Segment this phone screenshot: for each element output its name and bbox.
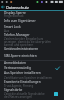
button[interactable]: des Netzes anzeigen bbox=[0, 95, 64, 99]
staticText: Datenschutz bbox=[6, 5, 29, 10]
button[interactable]: Display-Sperre bbox=[0, 11, 64, 15]
staticText: des Netzes anzeigen bbox=[4, 95, 32, 99]
staticText: Zeichen bei der Eingabe kurz bbox=[4, 37, 44, 41]
button[interactable]: Vertrauenswürdig bbox=[0, 66, 64, 71]
staticText: anzeigen, damit du sie überprüfen bbox=[4, 40, 51, 44]
button[interactable]: Anmeldedaten bbox=[0, 61, 64, 65]
button[interactable]: Zeigt die aktuelle Signalstärke bbox=[0, 92, 64, 96]
staticText: Vertrauenswürdig bbox=[4, 66, 31, 70]
staticText: Signalstärke bbox=[4, 88, 23, 92]
staticText: kannst und speichern bbox=[4, 43, 34, 47]
staticText: Geräteadministratoren bbox=[4, 47, 39, 51]
button[interactable]: Info zum Eigentümer bbox=[0, 19, 64, 23]
other: Enabled bbox=[55, 66, 60, 71]
staticText: Zeigt die aktuelle Signalstärke bbox=[4, 92, 45, 96]
button[interactable]: Zertifikate von Speicher installieren bbox=[0, 76, 64, 80]
button[interactable]: Signalstärke bbox=[0, 88, 64, 92]
staticText: Trust-Agents, Pinning bbox=[4, 84, 34, 88]
staticText: Info zum Eigentümer bbox=[4, 19, 36, 23]
staticText: Aus bbox=[4, 29, 10, 33]
staticText: Erweiterte Einstellungen bbox=[4, 80, 41, 84]
staticText: Display-Sperre bbox=[4, 11, 26, 15]
button[interactable]: anzeigen, damit du sie überprüfen bbox=[0, 40, 64, 44]
button[interactable]: SIM-Sperre einrichten bbox=[0, 54, 64, 58]
button[interactable]: Zeichen bei der Eingabe kurz bbox=[0, 37, 64, 41]
button[interactable]: Geräteadministratoren bbox=[0, 47, 64, 51]
staticText: Telefon-Manager bbox=[4, 33, 30, 37]
staticText: Fingerabdruck bbox=[4, 14, 24, 18]
button[interactable]: Checkbox checked bbox=[54, 92, 58, 96]
button[interactable]: Erweiterte Einstellungen bbox=[0, 80, 64, 84]
staticText: Anmeldedaten bbox=[4, 61, 27, 65]
button[interactable]: Aus Speicher installieren bbox=[0, 71, 64, 75]
staticText: Smart Lock bbox=[4, 25, 21, 29]
button[interactable]: Back bbox=[0, 4, 6, 10]
staticText: SIM-Sperre einrichten bbox=[4, 54, 37, 58]
button[interactable]: Smart Lock bbox=[0, 25, 64, 29]
staticText: Aus Speicher installieren bbox=[4, 71, 41, 75]
staticText: Zertifikate von Speicher installieren bbox=[4, 76, 52, 80]
button[interactable]: kannst und speichern bbox=[0, 43, 64, 47]
button[interactable]: Aus bbox=[0, 29, 64, 33]
button[interactable]: Telefon-Manager bbox=[0, 33, 64, 37]
button[interactable]: Fingerabdruck bbox=[0, 14, 64, 18]
button[interactable]: Trust-Agents, Pinning bbox=[0, 84, 64, 88]
